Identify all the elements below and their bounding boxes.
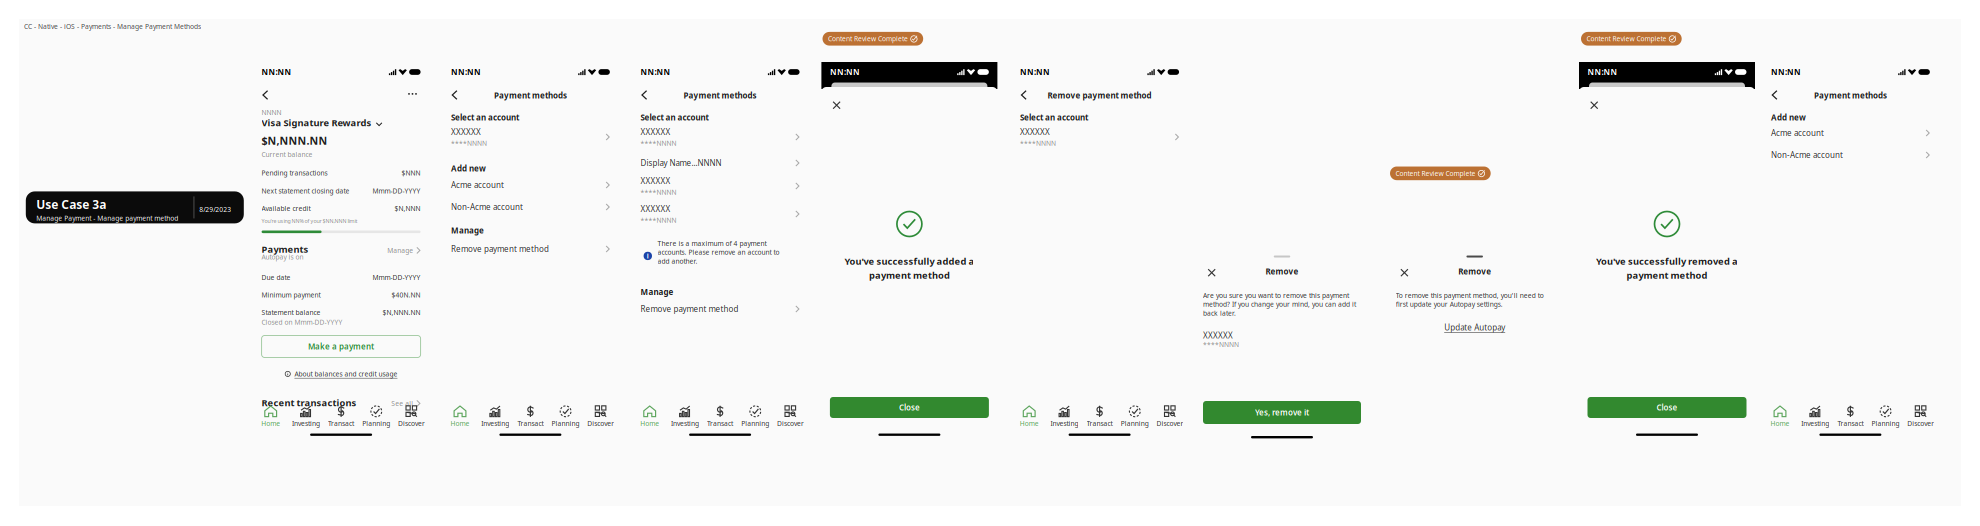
button[interactable]: Close — [1202, 264, 1221, 281]
staticText: Manage — [451, 225, 484, 236]
button[interactable]: Investing — [1798, 403, 1833, 430]
button[interactable]: Acme account — [1762, 127, 1938, 139]
button[interactable]: XXXXXX — [632, 176, 808, 196]
button[interactable]: Planning — [1868, 403, 1903, 430]
staticText: ****NNNN — [1203, 340, 1239, 349]
button[interactable]: Investing — [667, 403, 702, 430]
button[interactable]: Discover — [394, 403, 429, 430]
button[interactable]: Discover — [1152, 403, 1188, 430]
staticText: Remove payment method — [1048, 90, 1152, 101]
button[interactable]: Manage — [387, 244, 421, 257]
button[interactable]: Planning — [359, 403, 394, 430]
button[interactable]: Close — [1587, 397, 1746, 418]
button[interactable]: Close — [830, 397, 989, 418]
button[interactable]: Home — [253, 403, 288, 430]
staticText: Manage Payment - Manage payment method — [36, 214, 178, 223]
staticText: Mmm-DD-YYYY — [373, 186, 421, 195]
staticText: XXXXXX — [641, 175, 671, 186]
staticText: Planning — [1872, 419, 1900, 428]
staticText: Discover — [587, 419, 614, 428]
button[interactable]: Update Autopay — [1387, 322, 1562, 333]
button[interactable]: Remove payment method — [632, 303, 808, 315]
staticText: NNNN — [262, 108, 282, 117]
button[interactable]: Investing — [288, 403, 323, 430]
button[interactable]: Discover — [1903, 403, 1938, 430]
button[interactable]: XXXXXX — [632, 127, 808, 147]
staticText: NN:NN — [1587, 67, 1617, 77]
button[interactable]: Transact — [323, 403, 359, 430]
staticText: Close — [899, 402, 920, 413]
staticText: Statement balance — [262, 308, 321, 317]
staticText: ****NNNN — [641, 216, 677, 224]
staticText: Remove — [1265, 266, 1298, 277]
button[interactable]: Transact — [513, 403, 548, 430]
staticText: Planning — [1121, 419, 1149, 428]
button[interactable]: Close — [826, 95, 847, 115]
staticText: NN:NN — [641, 67, 671, 77]
button[interactable]: Planning — [548, 403, 583, 430]
button[interactable]: Investing — [478, 403, 513, 430]
button[interactable]: Back — [446, 86, 463, 104]
button[interactable]: See all — [391, 397, 421, 410]
staticText: Investing — [292, 419, 320, 428]
staticText: Available credit — [262, 204, 311, 213]
staticText: Payments — [262, 243, 309, 255]
staticText: Home — [1770, 419, 1789, 428]
button[interactable]: Back — [257, 86, 273, 104]
button[interactable]: Transact — [1082, 403, 1117, 430]
staticText: payment method — [1626, 269, 1707, 281]
staticText: ****NNNN — [641, 139, 677, 147]
staticText: $N,NNN.NN — [383, 308, 421, 317]
button[interactable]: Display Name...NNNN — [632, 157, 808, 169]
staticText: Display Name...NNNN — [641, 158, 722, 168]
button[interactable]: Non-Acme account — [442, 201, 618, 213]
staticText: Payment methods — [494, 90, 567, 101]
staticText: i — [647, 251, 649, 260]
staticText: 8/29/2023 — [199, 205, 231, 214]
button[interactable]: Back — [1766, 86, 1783, 104]
staticText: Planning — [741, 419, 769, 428]
button[interactable]: About balances and credit usage — [253, 368, 429, 380]
staticText: Content Review Complete — [1586, 34, 1666, 43]
button[interactable]: Planning — [1117, 403, 1152, 430]
button[interactable]: Home — [1012, 403, 1047, 430]
button[interactable]: Close — [1395, 264, 1414, 281]
staticText: Content Review Complete — [1395, 169, 1475, 178]
button[interactable]: Discover — [773, 403, 808, 430]
button[interactable]: Transact — [702, 403, 738, 430]
button[interactable]: Acme account — [442, 179, 618, 191]
staticText: Discover — [398, 419, 425, 428]
button[interactable]: Home — [632, 403, 667, 430]
staticText: Visa Signature Rewards — [262, 116, 372, 129]
staticText: ****NNNN — [1020, 139, 1056, 147]
staticText: Current balance — [262, 150, 313, 159]
button[interactable]: Make a payment — [262, 335, 421, 357]
button[interactable]: Back — [636, 86, 652, 104]
staticText: You've successfully added a — [844, 255, 974, 267]
button[interactable]: Discover — [583, 403, 618, 430]
button[interactable]: More options — [402, 87, 423, 101]
staticText: Planning — [552, 419, 580, 428]
staticText: Remove payment method — [641, 304, 739, 314]
button[interactable]: Remove payment method — [442, 243, 618, 255]
button[interactable]: Investing — [1047, 403, 1082, 430]
staticText: Discover — [1156, 419, 1183, 428]
staticText: $N,NNN — [395, 204, 421, 213]
button[interactable]: Close — [1584, 95, 1604, 115]
button[interactable]: XXXXXX — [632, 204, 808, 224]
staticText: Home — [450, 419, 469, 428]
button[interactable]: XXXXXX — [442, 127, 618, 147]
staticText: Next statement closing date — [262, 186, 350, 195]
button[interactable]: Transact — [1833, 403, 1868, 430]
button[interactable]: Back — [1016, 86, 1032, 104]
button[interactable]: Planning — [738, 403, 773, 430]
staticText: Are you sure you want to remove this pay… — [1203, 291, 1356, 318]
button[interactable]: Non-Acme account — [1762, 149, 1938, 161]
staticText: XXXXXX — [641, 126, 671, 137]
button[interactable]: Home — [1762, 403, 1798, 430]
button[interactable]: Home — [442, 403, 478, 430]
staticText: NN:NN — [1771, 67, 1801, 77]
button[interactable]: XXXXXX — [1012, 127, 1188, 147]
staticText: Pending transactions — [262, 168, 328, 177]
button[interactable]: Yes, remove it — [1203, 401, 1361, 424]
